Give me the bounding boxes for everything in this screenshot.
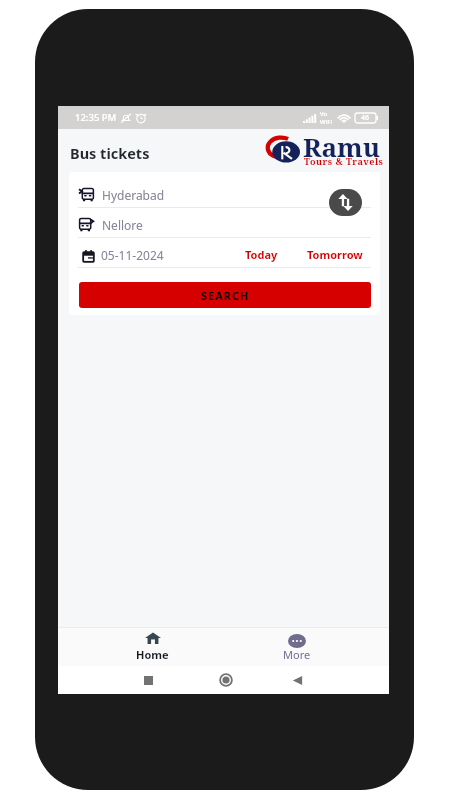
staticText: Tomorrow bbox=[307, 247, 363, 262]
staticText: Bus tickets bbox=[70, 143, 150, 163]
staticText: SEARCH bbox=[201, 288, 250, 303]
button[interactable]: Nellore bbox=[69, 210, 380, 239]
staticText: Tours & Travels bbox=[304, 155, 384, 167]
button[interactable]: Recent apps bbox=[134, 666, 162, 694]
button[interactable]: Hyderabad bbox=[69, 180, 380, 209]
button[interactable]: Tomorrow bbox=[303, 240, 367, 269]
staticText: Hyderabad bbox=[102, 187, 165, 203]
button[interactable]: 05-11-2024 bbox=[69, 240, 234, 269]
button[interactable]: Swap source and destination bbox=[329, 189, 362, 216]
staticText: Today bbox=[245, 247, 278, 262]
button[interactable]: Back bbox=[283, 666, 311, 694]
button[interactable]: SEARCH bbox=[79, 282, 371, 308]
button[interactable]: Today bbox=[241, 240, 282, 269]
staticText: 12:35 PM bbox=[75, 111, 117, 124]
button[interactable]: More bbox=[265, 628, 329, 666]
staticText: Nellore bbox=[102, 217, 143, 233]
button[interactable]: Home bbox=[212, 666, 240, 694]
button[interactable]: Home bbox=[120, 628, 184, 666]
staticText: WiFi bbox=[320, 118, 333, 126]
staticText: 46 bbox=[361, 113, 370, 123]
staticText: Vo bbox=[320, 110, 328, 118]
staticText: More bbox=[283, 647, 311, 662]
staticText: Ramu bbox=[303, 129, 381, 161]
staticText: 05-11-2024 bbox=[101, 247, 164, 263]
staticText: Home bbox=[136, 647, 169, 662]
